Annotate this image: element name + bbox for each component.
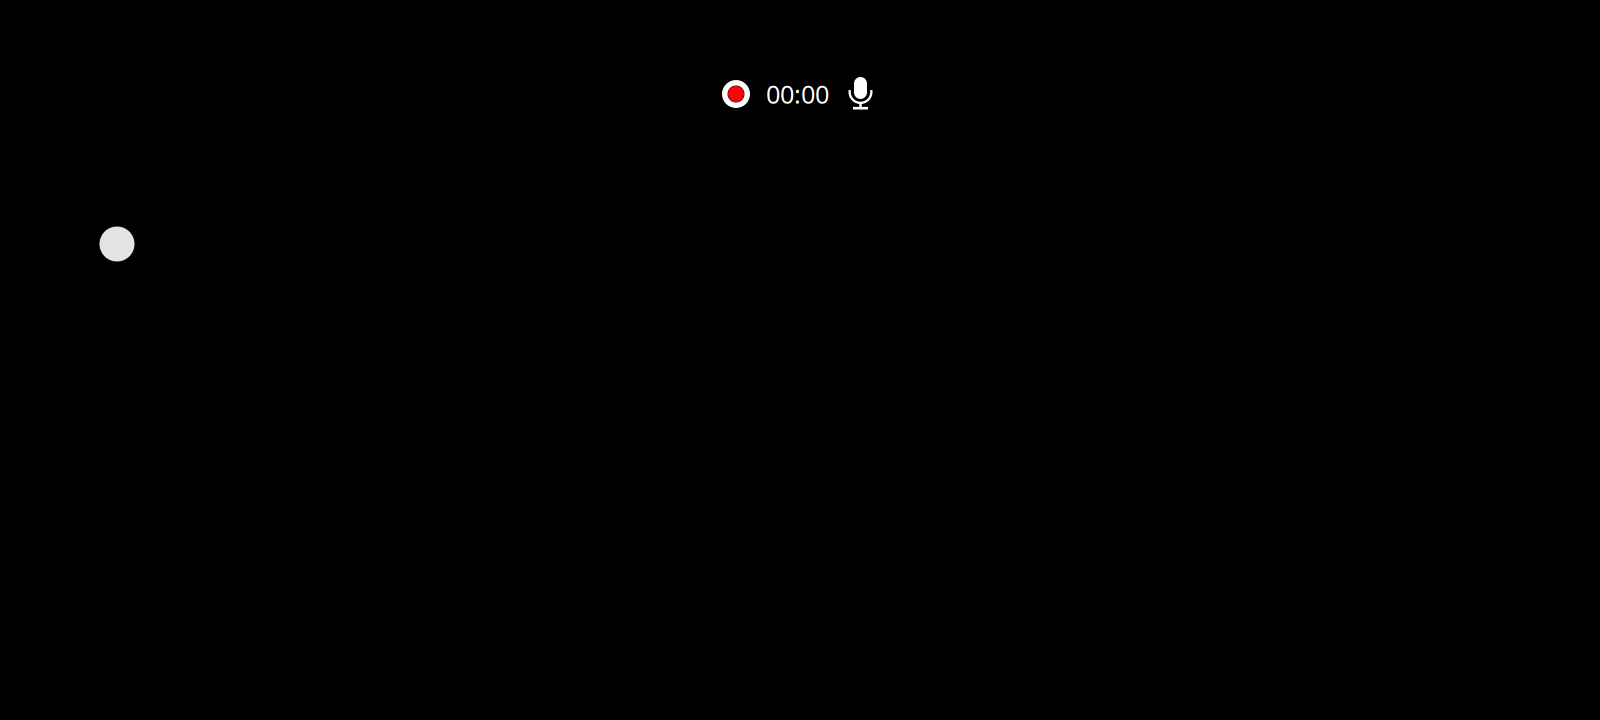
staticText: 00:00: [766, 77, 829, 111]
button[interactable]: Stop recording: [716, 74, 756, 114]
button[interactable]: Microphone: [842, 73, 880, 115]
